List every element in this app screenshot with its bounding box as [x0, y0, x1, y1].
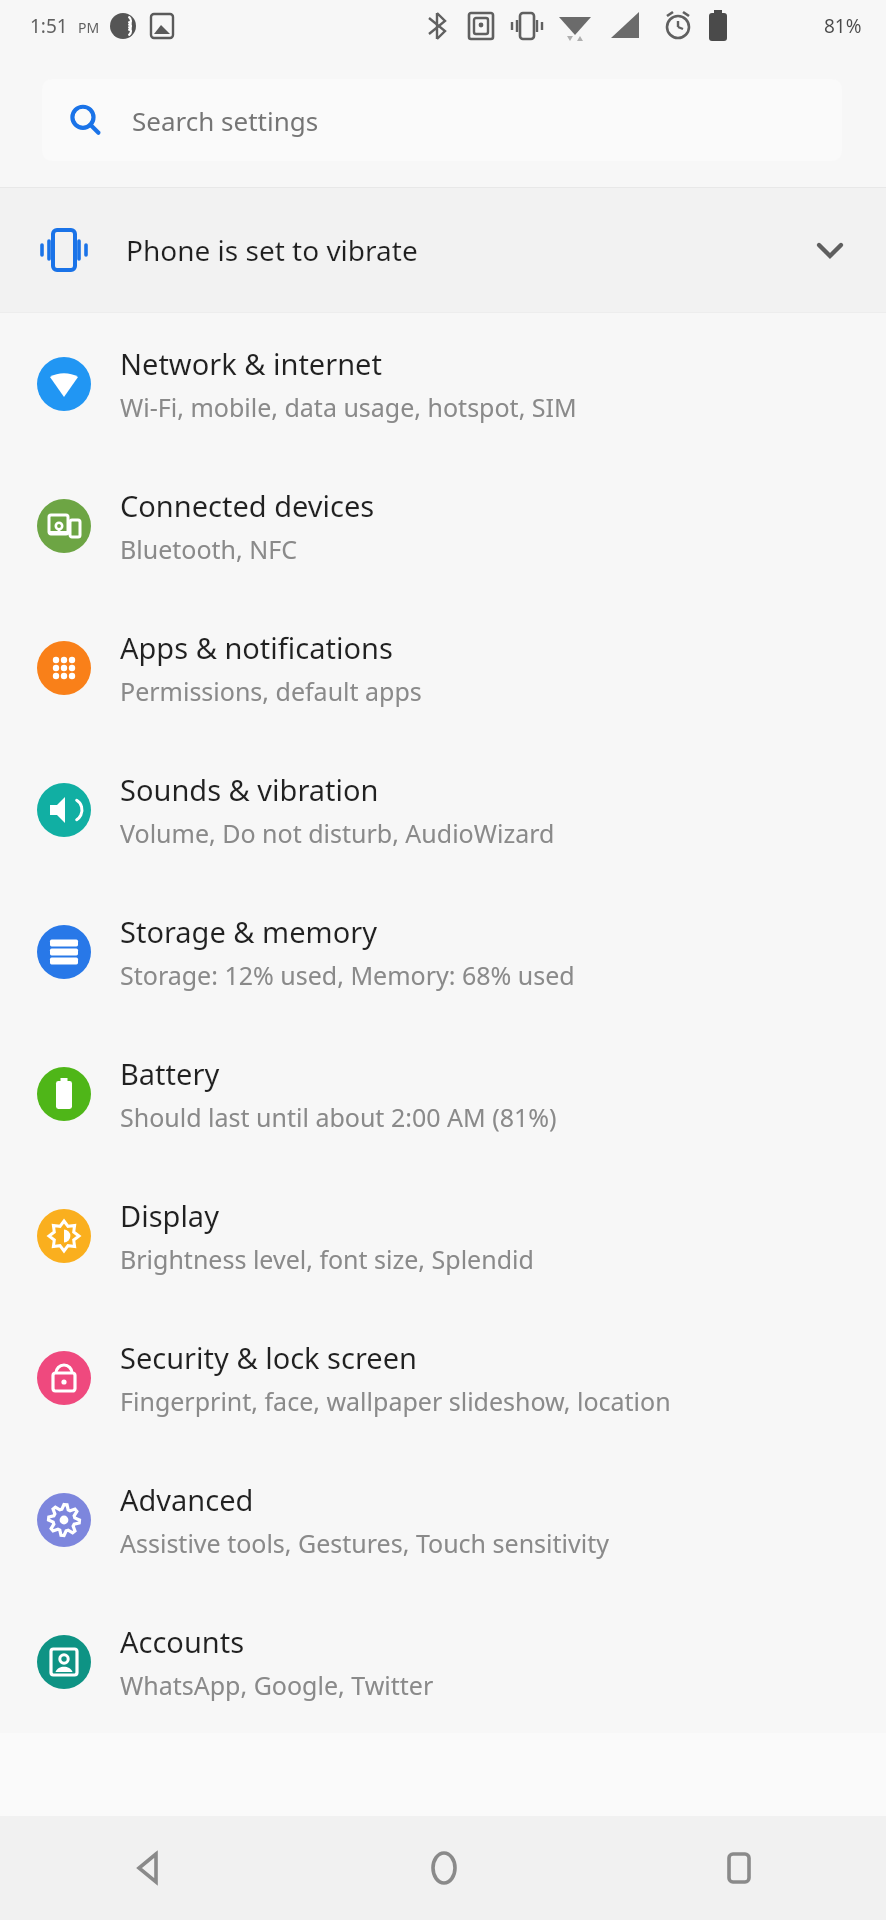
- staticText: Should last until about 2:00 AM (81%): [120, 1100, 557, 1134]
- button[interactable]: Storage & memory: [0, 881, 886, 1023]
- staticText: Sounds & vibration: [120, 770, 379, 809]
- staticText: 1:51: [30, 13, 68, 39]
- staticText: Storage: 12% used, Memory: 68% used: [120, 958, 575, 992]
- button[interactable]: Network & internet: [0, 313, 886, 455]
- staticText: Storage & memory: [120, 912, 377, 951]
- staticText: Battery: [120, 1054, 220, 1093]
- staticText: Security & lock screen: [120, 1338, 417, 1377]
- button[interactable]: Phone is set to vibrate: [0, 188, 886, 312]
- button[interactable]: Display: [0, 1165, 886, 1307]
- staticText: WhatsApp, Google, Twitter: [120, 1668, 434, 1702]
- staticText: Accounts: [120, 1622, 245, 1661]
- button[interactable]: Home: [296, 1816, 591, 1920]
- staticText: PM: [78, 18, 100, 37]
- button[interactable]: Apps & notifications: [0, 597, 886, 739]
- staticText: Volume, Do not disturb, AudioWizard: [120, 816, 555, 850]
- button[interactable]: Battery: [0, 1023, 886, 1165]
- staticText: Wi-Fi, mobile, data usage, hotspot, SIM: [120, 390, 577, 424]
- button[interactable]: Sounds & vibration: [0, 739, 886, 881]
- button[interactable]: Back: [0, 1816, 296, 1920]
- staticText: Apps & notifications: [120, 628, 393, 667]
- staticText: Display: [120, 1196, 219, 1235]
- staticText: Brightness level, font size, Splendid: [120, 1242, 534, 1276]
- staticText: Phone is set to vibrate: [126, 231, 810, 269]
- staticText: Connected devices: [120, 486, 375, 525]
- staticText: Assistive tools, Gestures, Touch sensiti…: [120, 1526, 609, 1560]
- button[interactable]: Recent apps: [591, 1816, 886, 1920]
- staticText: Network & internet: [120, 344, 382, 383]
- staticText: Advanced: [120, 1480, 254, 1519]
- staticText: 81%: [824, 13, 862, 39]
- button[interactable]: Accounts: [0, 1591, 886, 1733]
- button[interactable]: Advanced: [0, 1449, 886, 1591]
- staticText: Bluetooth, NFC: [120, 532, 297, 566]
- staticText: Fingerprint, face, wallpaper slideshow, …: [120, 1384, 671, 1418]
- button[interactable]: Connected devices: [0, 455, 886, 597]
- staticText: Permissions, default apps: [120, 674, 422, 708]
- staticText: Search settings: [132, 103, 319, 138]
- button[interactable]: Security & lock screen: [0, 1307, 886, 1449]
- button[interactable]: Search settings: [42, 79, 842, 161]
